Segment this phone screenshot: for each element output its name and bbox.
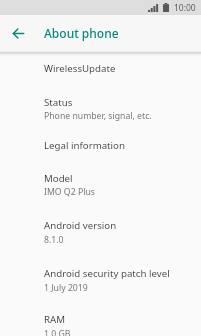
- button[interactable]: Legal information: [0, 128, 201, 164]
- staticText: Android version: [44, 219, 117, 232]
- staticText: About phone: [44, 25, 119, 41]
- staticText: Legal information: [44, 139, 125, 152]
- button[interactable]: Status: [0, 85, 201, 131]
- button[interactable]: Back: [0, 15, 36, 51]
- staticText: 10:00: [174, 2, 196, 14]
- staticText: Phone number, signal, etc.: [44, 110, 152, 122]
- staticText: RAM: [44, 313, 66, 326]
- staticText: 1 July 2019: [44, 282, 88, 294]
- staticText: 1.0 GB: [44, 328, 71, 336]
- staticText: WirelessUpdate: [44, 62, 116, 75]
- button[interactable]: Android version: [0, 208, 201, 259]
- staticText: Model: [44, 172, 73, 185]
- staticText: IMO Q2 Plus: [44, 186, 95, 198]
- button[interactable]: WirelessUpdate: [0, 51, 201, 88]
- button[interactable]: Android security patch level: [0, 256, 201, 305]
- button[interactable]: Model: [0, 161, 201, 211]
- staticText: Android security patch level: [44, 267, 170, 280]
- staticText: Status: [44, 96, 73, 109]
- button[interactable]: RAM: [0, 302, 201, 336]
- staticText: 8.1.0: [44, 234, 64, 246]
